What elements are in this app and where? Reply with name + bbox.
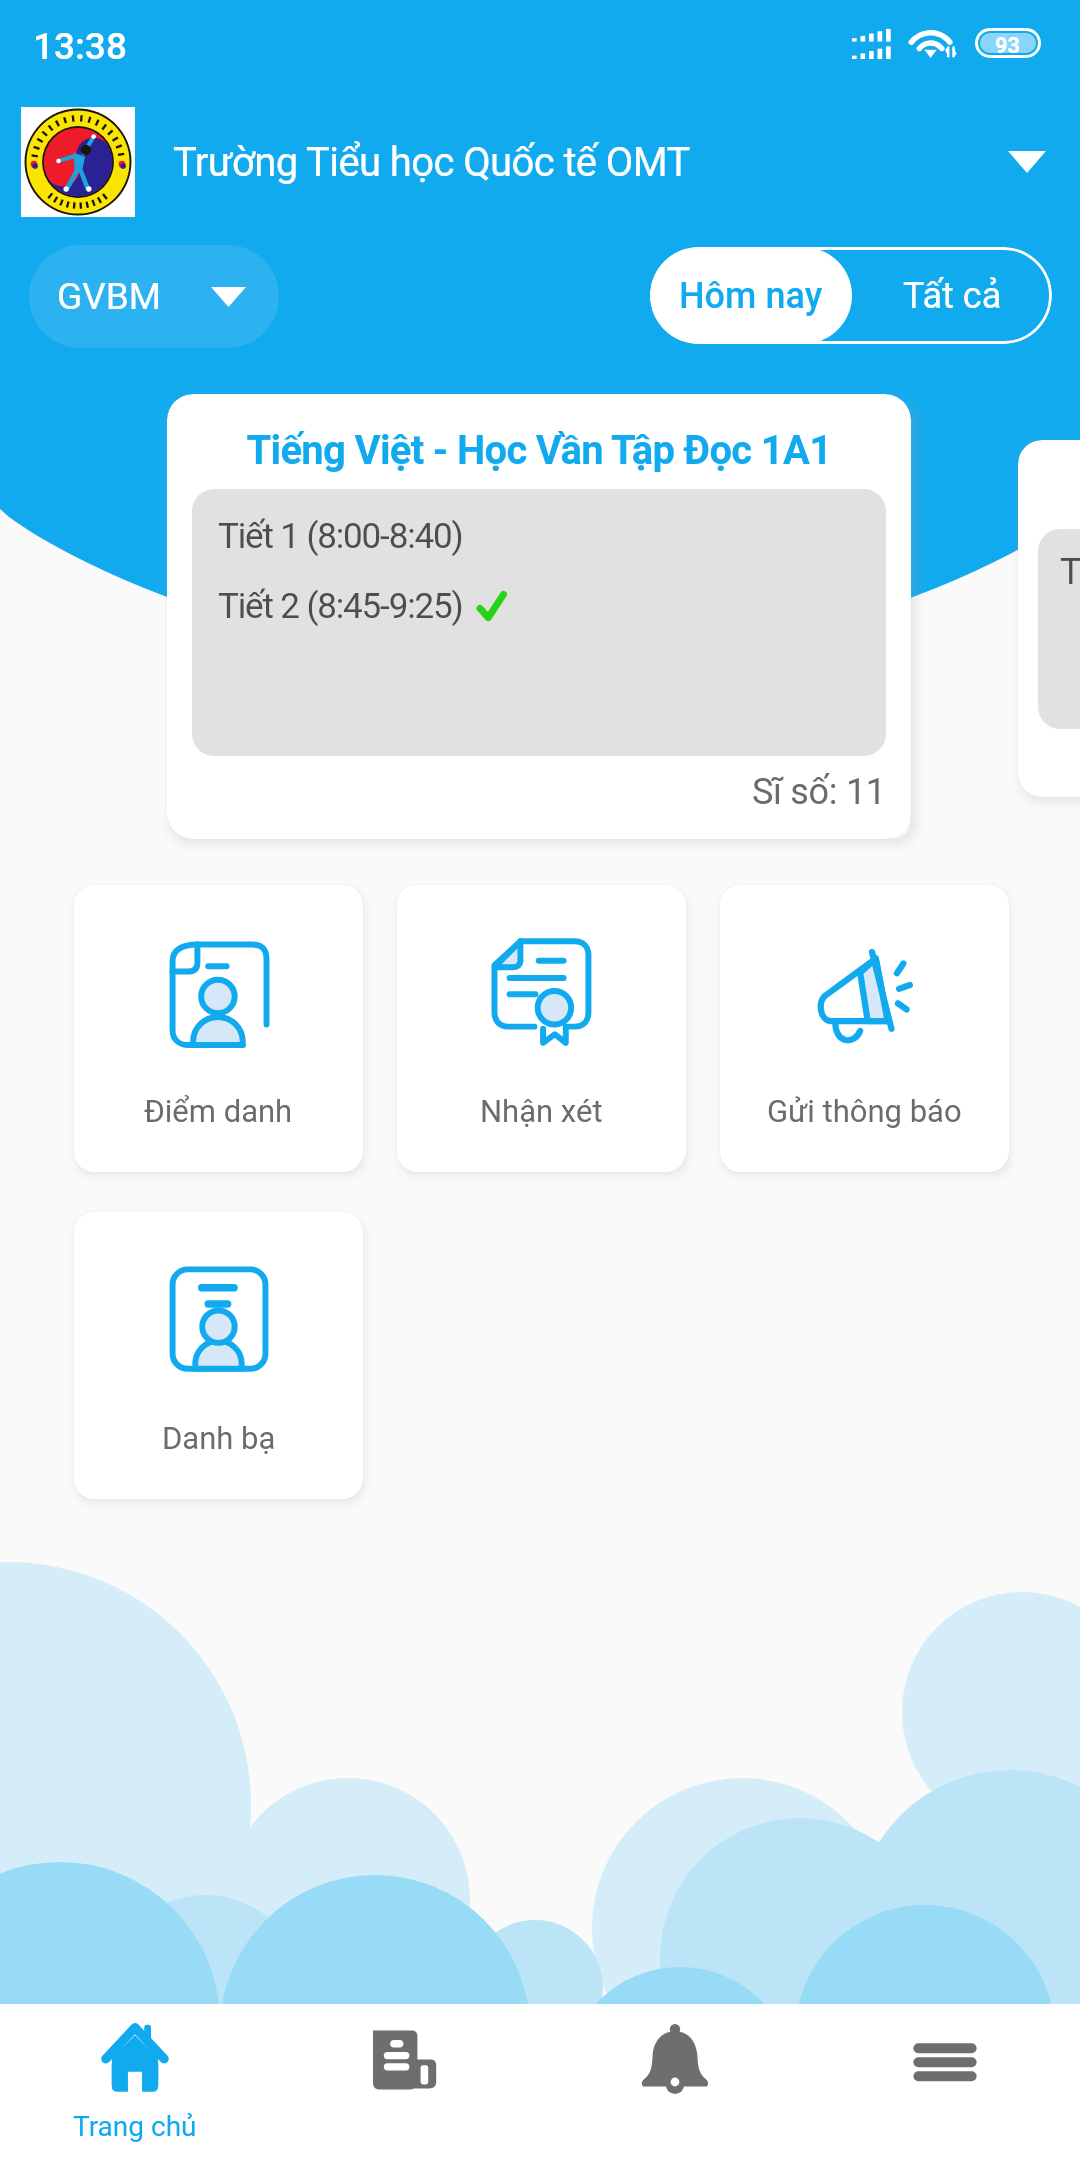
button[interactable]: Điểm danh <box>74 885 363 1172</box>
button[interactable]: Danh bạ <box>74 1212 363 1499</box>
staticText: Điểm danh <box>144 1093 293 1129</box>
button[interactable]: Hôm nay <box>650 247 852 344</box>
staticText: 93 <box>995 33 1021 53</box>
button[interactable]: Tất cả <box>852 247 1052 344</box>
staticText: Tiết <box>1060 551 1080 593</box>
button[interactable]: Trang chủ <box>0 2004 270 2160</box>
button[interactable]: Trường Tiểu học Quốc tế OMT <box>0 100 1080 224</box>
staticText: Sĩ số: 11 <box>752 771 886 813</box>
staticText: Trang chủ <box>73 2110 197 2143</box>
button[interactable]: Gửi thông báo <box>720 885 1009 1172</box>
staticText: Tiếng Việt - Học Vần Tập Đọc 1A1 <box>192 427 886 474</box>
staticText: Nhận xét <box>480 1093 603 1129</box>
staticText: Danh bạ <box>162 1420 276 1456</box>
staticText: Tất cả <box>903 275 1002 317</box>
button[interactable]: Tiếng Việt - Học Vần Tập Đọc 1A1 <box>167 394 911 839</box>
staticText: Gửi thông báo <box>767 1093 962 1129</box>
button[interactable]: Nhận xét <box>397 885 686 1172</box>
button[interactable]: Tiếng <box>1018 440 1080 797</box>
staticText: Tiết 2 (8:45-9:25) <box>218 586 463 627</box>
staticText: GVBM <box>57 275 162 318</box>
button[interactable]: GVBM <box>29 245 279 348</box>
button[interactable]: Thêm <box>810 2004 1080 2160</box>
button[interactable]: Chọn trường <box>982 117 1072 207</box>
staticText: 13:38 <box>33 25 127 68</box>
button[interactable]: Sổ liên lạc <box>270 2004 540 2160</box>
button[interactable]: Thông báo <box>540 2004 810 2160</box>
staticText: Tiết 1 (8:00-8:40) <box>218 516 463 557</box>
staticText: Trường Tiểu học Quốc tế OMT <box>173 139 982 186</box>
staticText: Hôm nay <box>679 275 823 317</box>
